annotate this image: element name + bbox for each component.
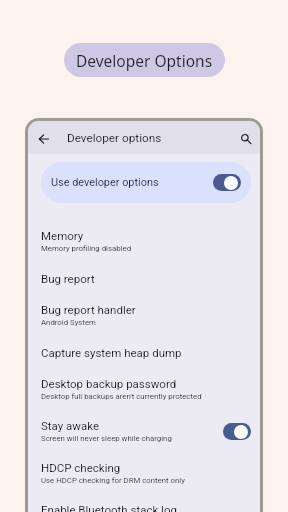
button[interactable]: Developer Options [64, 43, 225, 77]
staticText: Desktop full backups aren't currently pr… [41, 392, 202, 401]
staticText: Enable Bluetooth stack log [41, 503, 177, 512]
staticText: Stay awake [41, 419, 100, 432]
button[interactable]: Enable Bluetooth stack log [28, 494, 260, 512]
button[interactable]: Toggle [223, 423, 251, 440]
staticText: Desktop backup password [41, 377, 177, 390]
staticText: HDCP checking [41, 461, 121, 474]
button[interactable]: Stay awake [28, 410, 260, 452]
staticText: Developer options [67, 131, 162, 145]
staticText: Bug report handler [41, 303, 136, 316]
staticText: Memory profiling disabled [41, 244, 132, 253]
staticText: Use developer options [51, 176, 159, 189]
button[interactable]: Bug report [28, 262, 260, 294]
button[interactable]: Bug report handler [28, 294, 260, 336]
button[interactable]: Use developer options [41, 162, 251, 203]
button[interactable]: Search [232, 121, 260, 154]
button[interactable]: Capture system heap dump [28, 336, 260, 368]
button[interactable]: Memory [28, 220, 260, 262]
staticText: Developer Options [76, 50, 213, 71]
button[interactable]: Back [28, 121, 60, 154]
button[interactable]: Toggle [213, 174, 241, 191]
button[interactable]: Desktop backup password [28, 368, 260, 410]
staticText: Screen will never sleep while charging [41, 434, 172, 443]
staticText: Use HDCP checking for DRM content only [41, 476, 185, 485]
staticText: Android System [41, 318, 96, 327]
staticText: Memory [41, 229, 84, 242]
staticText: Bug report [41, 272, 95, 285]
button[interactable]: HDCP checking [28, 452, 260, 494]
staticText: Capture system heap dump [41, 346, 182, 359]
